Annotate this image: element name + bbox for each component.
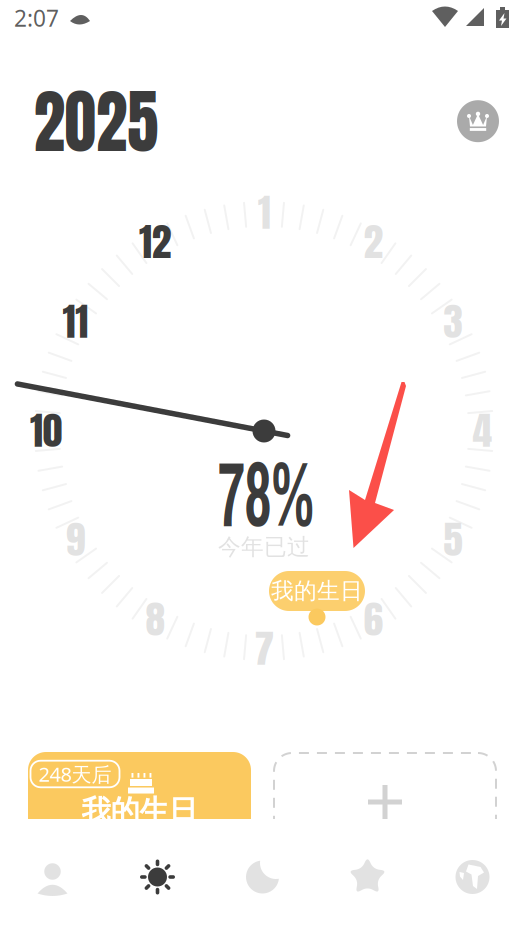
staticText: 78% <box>192 432 340 554</box>
staticText: 8 <box>146 592 164 648</box>
staticText: 7 <box>255 621 273 677</box>
button[interactable]: Premium <box>457 100 499 142</box>
staticText: 1 <box>258 185 270 241</box>
staticText: 5 <box>444 512 462 568</box>
button[interactable]: Today <box>105 855 210 899</box>
staticText: 3 <box>444 294 462 350</box>
staticText: 我的生日 <box>81 793 197 829</box>
button[interactable]: 248天后 <box>28 752 251 862</box>
staticText: 10 <box>31 403 61 459</box>
staticText: 11 <box>63 294 87 350</box>
button[interactable]: World <box>420 855 525 899</box>
button[interactable]: 我的生日 <box>269 571 365 611</box>
staticText: 2025 <box>26 68 166 174</box>
staticText: 248天后 <box>38 761 111 787</box>
staticText: 12 <box>140 214 170 270</box>
staticText: 2:07 <box>14 3 59 33</box>
staticText: 6 <box>364 592 382 648</box>
button[interactable]: Add <box>273 752 497 862</box>
button[interactable]: Night <box>210 855 315 899</box>
staticText: 我的生日 <box>271 577 363 605</box>
button[interactable]: Favorites <box>315 855 420 899</box>
button[interactable]: Profile <box>0 855 105 899</box>
staticText: 9 <box>66 512 84 568</box>
staticText: 4 <box>473 403 491 459</box>
staticText: 2 <box>364 214 382 270</box>
staticText: 今年已过 <box>218 533 310 561</box>
